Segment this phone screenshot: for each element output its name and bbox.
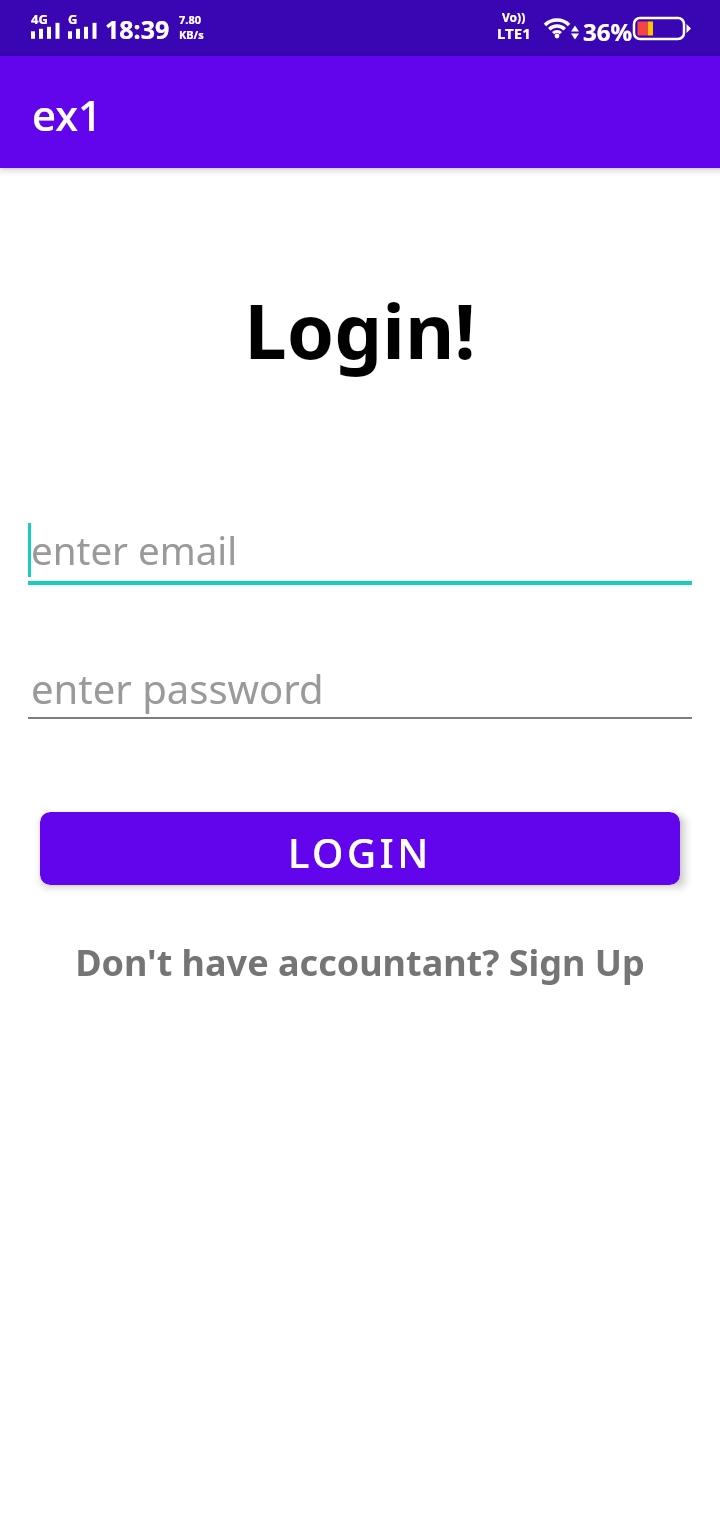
- staticText: 4G: [31, 10, 48, 28]
- staticText: LTE1: [497, 23, 531, 43]
- staticText: KB/s: [179, 27, 204, 42]
- button[interactable]: Don't have accountant? Sign Up: [0, 938, 720, 987]
- staticText: ex1: [32, 86, 103, 143]
- staticText: 7.80: [179, 12, 201, 27]
- staticText: 36%: [583, 15, 633, 48]
- staticText: Vo)): [502, 9, 526, 25]
- button[interactable]: enter email: [28, 510, 692, 585]
- button[interactable]: enter password: [28, 648, 692, 719]
- staticText: Login!: [0, 278, 720, 382]
- staticText: LOGIN: [288, 825, 432, 879]
- staticText: 18:39: [105, 12, 170, 46]
- staticText: enter email: [31, 524, 238, 576]
- staticText: enter password: [31, 661, 324, 715]
- staticText: G: [68, 10, 78, 28]
- button[interactable]: LOGIN: [40, 812, 680, 885]
